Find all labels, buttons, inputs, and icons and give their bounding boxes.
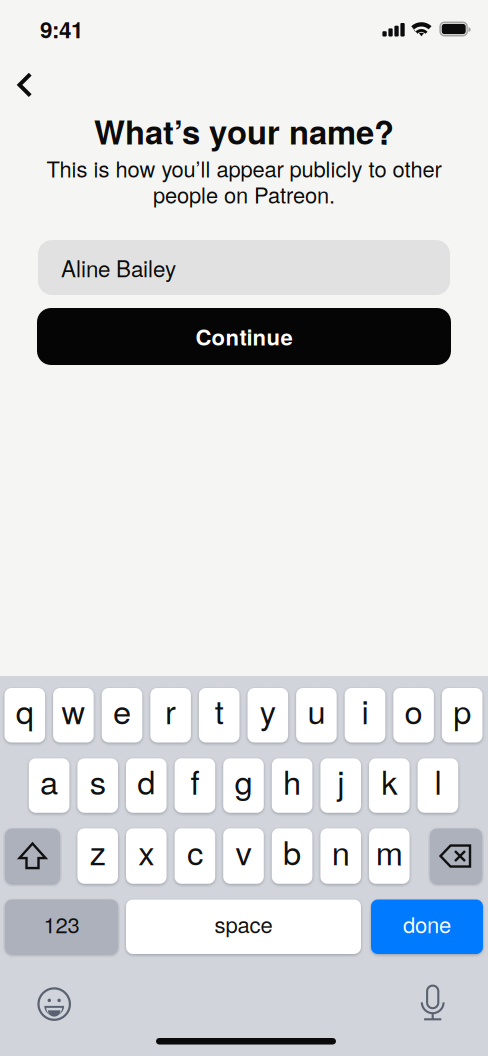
staticText: t — [215, 687, 224, 734]
staticText: people on Patreon. — [153, 178, 335, 210]
button[interactable]: n — [320, 828, 361, 884]
staticText: w — [61, 687, 85, 734]
staticText: k — [381, 757, 397, 804]
staticText: c — [187, 828, 203, 874]
button[interactable]: Shift — [5, 828, 60, 883]
staticText: space — [214, 908, 272, 939]
button[interactable]: h — [272, 758, 312, 813]
button[interactable]: Dictate — [421, 985, 445, 1020]
button[interactable]: r — [150, 688, 191, 742]
staticText: z — [90, 828, 106, 874]
button[interactable]: Emoji — [37, 987, 71, 1021]
button[interactable]: o — [393, 688, 434, 742]
button[interactable]: e — [102, 688, 142, 742]
button[interactable]: u — [296, 688, 337, 742]
button[interactable]: done — [371, 899, 483, 954]
staticText: Aline Bailey — [61, 251, 176, 284]
button[interactable]: x — [126, 828, 167, 884]
staticText: s — [90, 757, 106, 804]
staticText: f — [190, 757, 199, 804]
button[interactable]: q — [4, 688, 45, 742]
staticText: b — [283, 828, 301, 874]
button[interactable]: j — [320, 758, 361, 813]
staticText: 9:41 — [40, 13, 83, 45]
button[interactable]: d — [126, 758, 167, 813]
button[interactable]: m — [369, 828, 410, 884]
button[interactable]: Back — [4, 64, 56, 108]
staticText: n — [332, 828, 350, 874]
button[interactable]: w — [53, 688, 94, 742]
button[interactable]: 123 — [5, 899, 118, 954]
staticText: o — [405, 687, 423, 734]
staticText: i — [361, 687, 368, 734]
staticText: e — [113, 687, 131, 734]
button[interactable]: a — [29, 758, 69, 813]
button[interactable]: g — [223, 758, 264, 813]
button[interactable]: Continue — [37, 308, 451, 365]
button[interactable]: y — [247, 688, 288, 742]
staticText: g — [234, 757, 252, 804]
staticText: What’s your name? — [94, 107, 394, 154]
staticText: 123 — [43, 908, 79, 939]
button[interactable]: z — [77, 828, 118, 884]
staticText: d — [137, 757, 155, 804]
staticText: m — [376, 828, 403, 874]
staticText: Continue — [195, 321, 292, 352]
button[interactable]: space — [126, 899, 361, 954]
button[interactable]: i — [345, 688, 385, 742]
staticText: done — [403, 908, 451, 939]
button[interactable]: Delete — [430, 828, 482, 883]
staticText: u — [307, 687, 325, 734]
staticText: h — [283, 757, 301, 804]
staticText: This is how you’ll appear publicly to ot… — [46, 152, 441, 184]
staticText: y — [260, 687, 276, 734]
button[interactable]: b — [272, 828, 312, 884]
staticText: r — [165, 687, 176, 734]
staticText: q — [16, 687, 34, 734]
staticText: j — [337, 757, 344, 804]
staticText: a — [40, 757, 58, 804]
button[interactable]: t — [199, 688, 239, 742]
button[interactable]: c — [175, 828, 215, 884]
button[interactable]: p — [442, 688, 482, 742]
staticText: p — [453, 687, 471, 734]
button[interactable]: l — [418, 758, 458, 813]
staticText: l — [434, 757, 441, 804]
staticText: v — [235, 828, 251, 874]
button[interactable]: f — [175, 758, 215, 813]
button[interactable]: k — [369, 758, 410, 813]
button[interactable]: v — [223, 828, 264, 884]
staticText: x — [138, 828, 154, 874]
button[interactable]: s — [77, 758, 118, 813]
